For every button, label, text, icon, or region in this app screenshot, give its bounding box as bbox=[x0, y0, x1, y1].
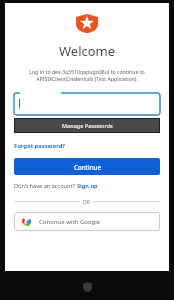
staticText: Continue bbox=[74, 163, 101, 171]
staticText: Continue with Google bbox=[39, 218, 101, 226]
button[interactable]: Manage Passwords bbox=[14, 118, 160, 133]
button[interactable]: Continue bbox=[14, 158, 160, 175]
staticText: Manage Passwords bbox=[62, 122, 113, 129]
staticText: Forgot password? bbox=[14, 142, 66, 150]
button[interactable]: Sign up bbox=[77, 182, 98, 190]
button[interactable] bbox=[14, 93, 160, 115]
button[interactable]: Forgot password? bbox=[14, 142, 160, 150]
staticText: Welcome bbox=[59, 42, 116, 60]
staticText: Don't have an account? bbox=[14, 182, 77, 190]
staticText: OR bbox=[80, 198, 93, 205]
staticText: Log in to dev-3a3510qapugo08ul to contin… bbox=[16, 68, 158, 83]
staticText: Sign up bbox=[77, 182, 98, 190]
button[interactable]: Continue with Google bbox=[14, 212, 160, 231]
